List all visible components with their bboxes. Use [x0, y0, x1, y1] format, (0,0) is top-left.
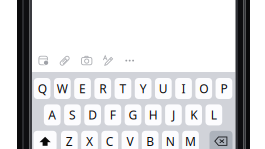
staticText: R — [99, 80, 106, 96]
button[interactable]: B — [142, 131, 158, 149]
button[interactable]: Markup — [102, 55, 114, 66]
staticText: F — [110, 107, 116, 123]
button[interactable]: Y — [135, 78, 151, 99]
button[interactable]: E — [74, 78, 91, 99]
staticText: J — [172, 107, 175, 123]
button[interactable]: J — [165, 104, 182, 125]
button[interactable]: More — [124, 55, 135, 66]
button[interactable]: Z — [61, 131, 78, 149]
staticText: B — [146, 133, 154, 149]
button[interactable]: V — [122, 131, 138, 149]
staticText: Y — [140, 80, 147, 96]
button[interactable]: O — [195, 78, 212, 99]
staticText: K — [190, 107, 197, 123]
button[interactable]: Q — [34, 78, 50, 99]
button[interactable]: Apps — [38, 55, 49, 66]
button[interactable]: F — [104, 104, 121, 125]
staticText: N — [166, 133, 175, 149]
staticText: Z — [66, 133, 73, 149]
button[interactable]: I — [175, 78, 192, 99]
staticText: H — [149, 107, 158, 123]
button[interactable]: P — [216, 78, 232, 99]
staticText: U — [159, 80, 168, 96]
staticText: M — [185, 133, 196, 149]
button[interactable]: Attach file — [59, 55, 71, 66]
button[interactable]: L — [205, 104, 222, 125]
button[interactable]: K — [185, 104, 202, 125]
button[interactable]: S — [64, 104, 81, 125]
button[interactable]: X — [81, 131, 98, 149]
button[interactable]: T — [115, 78, 131, 99]
staticText: I — [182, 80, 186, 96]
staticText: L — [211, 107, 217, 123]
button[interactable]: A — [44, 104, 61, 125]
staticText: A — [48, 107, 56, 123]
staticText: X — [86, 133, 93, 149]
button[interactable]: G — [125, 104, 141, 125]
staticText: Q — [38, 80, 47, 96]
button[interactable]: C — [101, 131, 118, 149]
staticText: P — [220, 80, 227, 96]
staticText: T — [119, 80, 126, 96]
staticText: C — [106, 133, 114, 149]
button[interactable]: R — [94, 78, 111, 99]
button[interactable]: W — [54, 78, 71, 99]
button[interactable]: D — [84, 104, 101, 125]
button[interactable]: N — [162, 131, 179, 149]
staticText: D — [88, 107, 97, 123]
button[interactable]: U — [155, 78, 172, 99]
staticText: E — [79, 80, 86, 96]
staticText: G — [129, 107, 138, 123]
button[interactable]: Delete — [209, 131, 232, 149]
button[interactable]: H — [145, 104, 162, 125]
staticText: O — [199, 80, 208, 96]
staticText: W — [57, 80, 68, 96]
staticText: V — [126, 133, 133, 149]
staticText: S — [69, 107, 76, 123]
button[interactable]: Shift — [34, 131, 57, 149]
button[interactable]: Camera — [81, 55, 92, 66]
button[interactable]: M — [182, 131, 199, 149]
